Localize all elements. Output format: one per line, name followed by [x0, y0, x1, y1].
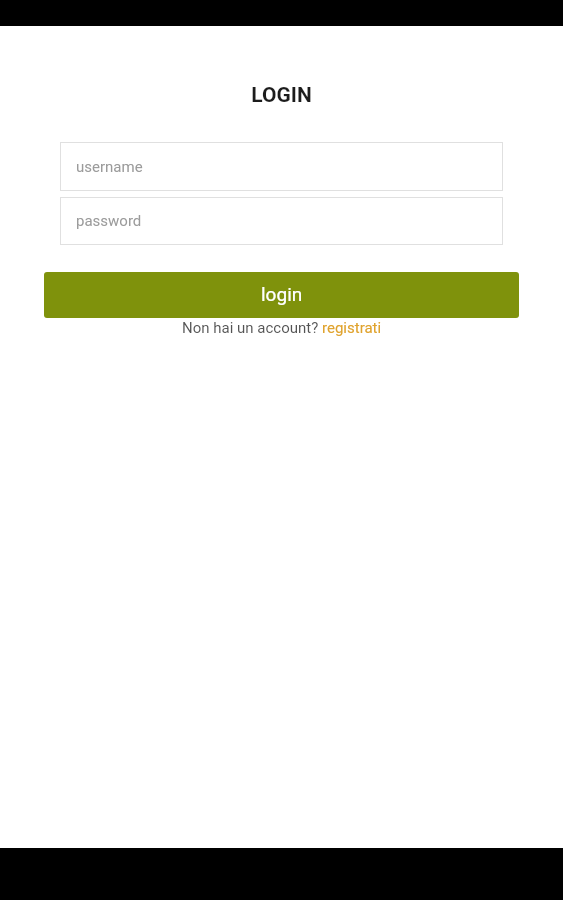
staticText: LOGIN — [0, 83, 563, 108]
button[interactable]: login — [44, 272, 519, 318]
button[interactable]: Non hai un account? registrati — [180, 319, 384, 337]
staticText: username — [76, 158, 143, 176]
button[interactable]: password — [60, 197, 503, 245]
staticText: login — [261, 283, 303, 305]
staticText: password — [76, 212, 142, 230]
button[interactable]: username — [60, 142, 503, 191]
